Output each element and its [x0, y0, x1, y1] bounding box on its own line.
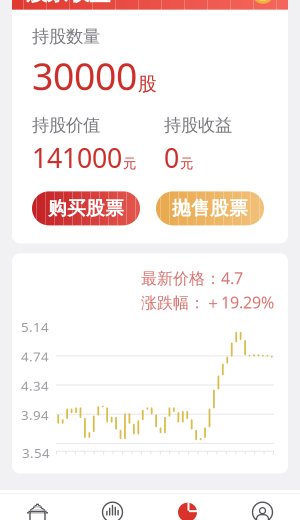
- staticText: 持股价值: [32, 115, 100, 136]
- staticText: 抛售股票: [172, 197, 248, 220]
- staticText: 最新价格：4.7: [141, 267, 243, 289]
- button[interactable]: 抛售股票: [156, 191, 264, 225]
- staticText: 4.74: [21, 347, 49, 365]
- staticText: 3.94: [21, 406, 49, 424]
- button[interactable]: 首页: [0, 494, 75, 520]
- staticText: 141000: [32, 140, 122, 175]
- staticText: 股: [138, 73, 157, 96]
- button[interactable]: 股市: [150, 494, 225, 520]
- staticText: 3.54: [22, 444, 50, 462]
- staticText: 涨跌幅：＋19.29%: [141, 292, 274, 313]
- staticText: 30000: [32, 51, 137, 101]
- staticText: 购买股票: [48, 197, 124, 220]
- staticText: 0: [164, 140, 179, 175]
- staticText: 持股收益: [164, 115, 232, 136]
- staticText: 持股数量: [32, 26, 100, 47]
- button[interactable]: 余额: [252, 0, 274, 4]
- button[interactable]: 政协: [75, 494, 150, 520]
- staticText: ¥: [259, 0, 267, 3]
- staticText: 股票收益: [26, 0, 110, 6]
- staticText: 元: [123, 155, 136, 172]
- staticText: 4.34: [21, 377, 49, 394]
- button[interactable]: 购买股票: [32, 191, 140, 225]
- staticText: 元: [180, 155, 193, 172]
- button[interactable]: 我的: [225, 494, 300, 520]
- staticText: 5.14: [21, 318, 49, 336]
